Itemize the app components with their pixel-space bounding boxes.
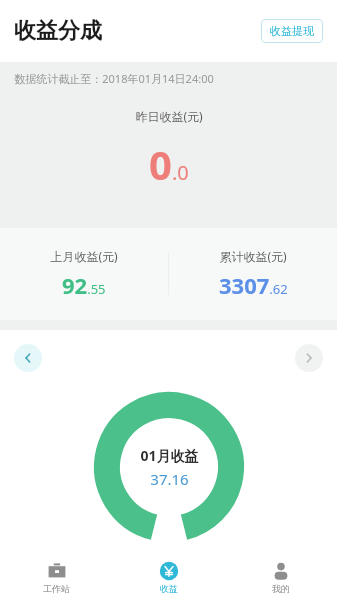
- staticText: 上月收益(元): [50, 248, 118, 264]
- staticText: 昨日收益(元): [135, 108, 203, 124]
- button[interactable]: 收益提现: [261, 19, 323, 43]
- staticText: 累计收益(元): [219, 248, 287, 264]
- button[interactable]: Previous month: [14, 344, 42, 372]
- staticText: 工作站: [43, 583, 70, 594]
- staticText: 92.55: [62, 270, 106, 300]
- staticText: 收益提现: [270, 24, 314, 38]
- button[interactable]: 上月收益(元): [0, 248, 168, 300]
- button[interactable]: 收益: [113, 554, 225, 600]
- staticText: 3307.62: [219, 270, 288, 300]
- staticText: 37.16: [150, 469, 189, 489]
- button[interactable]: Next month: [295, 344, 323, 372]
- staticText: 收益分成: [14, 17, 102, 45]
- staticText: 0.0: [149, 137, 189, 191]
- button[interactable]: 累计收益(元): [169, 248, 337, 300]
- button[interactable]: 工作站: [0, 554, 113, 600]
- staticText: 数据统计截止至：2018年01月14日24:00: [14, 71, 214, 86]
- button[interactable]: 我的: [225, 554, 337, 600]
- staticText: 收益: [160, 583, 178, 594]
- staticText: 我的: [272, 583, 290, 594]
- staticText: 01月收益: [140, 446, 199, 465]
